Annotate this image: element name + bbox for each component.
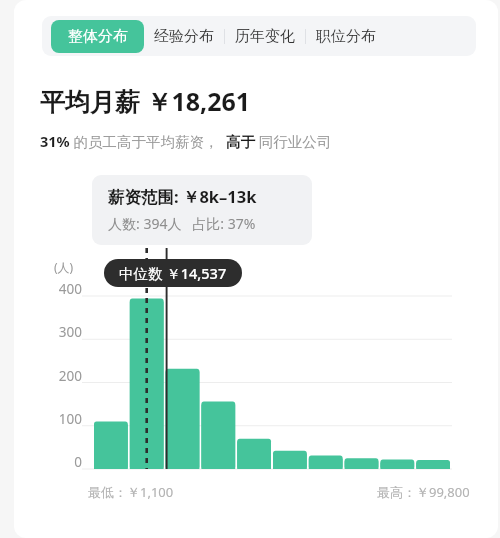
staticText: 0	[14, 453, 82, 471]
staticText: 31% 的员工高于平均薪资， 高于 同行业公司	[40, 131, 332, 151]
staticText: 400	[14, 280, 82, 298]
staticText: 历年变化	[235, 27, 295, 46]
staticText: 100	[14, 410, 82, 428]
staticText: 整体分布	[68, 27, 128, 46]
staticText: 平均月薪 ￥18,261	[40, 84, 251, 118]
staticText: 300	[14, 323, 82, 341]
staticText: (人)	[54, 259, 74, 275]
staticText: 最高：￥99,800	[377, 483, 470, 501]
staticText: 最低：￥1,100	[88, 483, 174, 501]
button[interactable]: 历年变化	[225, 16, 305, 56]
staticText: 人数: 394人 占比: 37%	[108, 214, 256, 233]
button[interactable]: 中位数 ￥14,537	[104, 259, 242, 287]
staticText: 薪资范围: ￥8k–13k	[108, 185, 257, 208]
button[interactable]: 薪资范围: ￥8k–13k	[92, 175, 312, 245]
staticText: 200	[14, 367, 82, 385]
staticText: 中位数 ￥14,537	[119, 263, 227, 283]
button[interactable]: 经验分布	[144, 16, 224, 56]
staticText: 经验分布	[154, 27, 214, 46]
staticText: 职位分布	[316, 27, 376, 46]
button[interactable]: 职位分布	[306, 16, 386, 56]
button[interactable]: 整体分布	[51, 20, 144, 53]
